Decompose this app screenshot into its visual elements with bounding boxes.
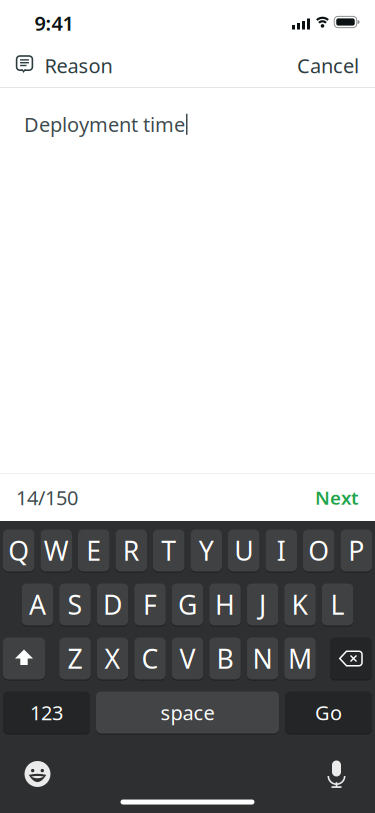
staticText: 123: [30, 699, 63, 726]
button[interactable]: Q: [3, 529, 34, 572]
button[interactable]: Y: [190, 529, 222, 572]
staticText: Deployment time: [24, 111, 185, 138]
button[interactable]: Delete: [330, 637, 372, 680]
button[interactable]: D: [97, 583, 128, 626]
button[interactable]: M: [284, 637, 316, 680]
staticText: C: [141, 641, 158, 676]
staticText: S: [67, 587, 82, 622]
staticText: W: [44, 533, 69, 568]
staticText: X: [104, 641, 120, 676]
staticText: G: [178, 587, 197, 622]
button[interactable]: 123: [3, 691, 90, 734]
button[interactable]: Dictation: [326, 759, 346, 789]
staticText: Z: [67, 641, 82, 676]
button[interactable]: K: [284, 583, 316, 626]
button[interactable]: V: [172, 637, 203, 680]
button[interactable]: X: [97, 637, 128, 680]
staticText: R: [123, 533, 140, 568]
staticText: D: [103, 587, 122, 622]
staticText: Y: [199, 533, 214, 568]
button[interactable]: Z: [59, 637, 91, 680]
button[interactable]: J: [247, 583, 278, 626]
button[interactable]: F: [134, 583, 166, 626]
staticText: T: [161, 533, 176, 568]
button[interactable]: C: [134, 637, 166, 680]
button[interactable]: H: [209, 583, 241, 626]
staticText: J: [259, 587, 266, 622]
staticText: U: [234, 533, 253, 568]
staticText: P: [348, 533, 364, 568]
button[interactable]: O: [303, 529, 334, 572]
staticText: space: [160, 699, 214, 726]
button[interactable]: Emoji: [24, 761, 50, 787]
staticText: V: [179, 641, 195, 676]
button[interactable]: Shift: [3, 637, 45, 680]
staticText: 9:41: [34, 10, 73, 36]
staticText: F: [143, 587, 157, 622]
button[interactable]: L: [322, 583, 353, 626]
button[interactable]: Next: [315, 485, 359, 510]
button[interactable]: Go: [285, 691, 372, 734]
button[interactable]: G: [172, 583, 203, 626]
staticText: Cancel: [297, 52, 359, 79]
button[interactable]: R: [115, 529, 147, 572]
staticText: K: [291, 587, 308, 622]
button[interactable]: B: [209, 637, 241, 680]
button[interactable]: Cancel: [297, 52, 375, 79]
button[interactable]: A: [22, 583, 53, 626]
button[interactable]: I: [265, 529, 297, 572]
button[interactable]: E: [78, 529, 109, 572]
staticText: I: [277, 533, 286, 568]
staticText: Reason: [44, 52, 112, 79]
staticText: Go: [315, 699, 342, 726]
staticText: H: [215, 587, 235, 622]
staticText: O: [308, 533, 329, 568]
staticText: B: [216, 641, 233, 676]
staticText: 14/150: [16, 484, 78, 511]
button[interactable]: N: [247, 637, 278, 680]
button[interactable]: U: [228, 529, 259, 572]
staticText: Q: [8, 533, 29, 568]
button[interactable]: space: [96, 691, 279, 734]
button[interactable]: P: [340, 529, 372, 572]
staticText: M: [288, 641, 312, 676]
button[interactable]: S: [59, 583, 91, 626]
button[interactable]: T: [153, 529, 184, 572]
staticText: N: [252, 641, 272, 676]
button[interactable]: W: [40, 529, 72, 572]
staticText: L: [330, 587, 344, 622]
staticText: E: [86, 533, 101, 568]
staticText: A: [29, 587, 46, 622]
staticText: Next: [315, 485, 359, 510]
